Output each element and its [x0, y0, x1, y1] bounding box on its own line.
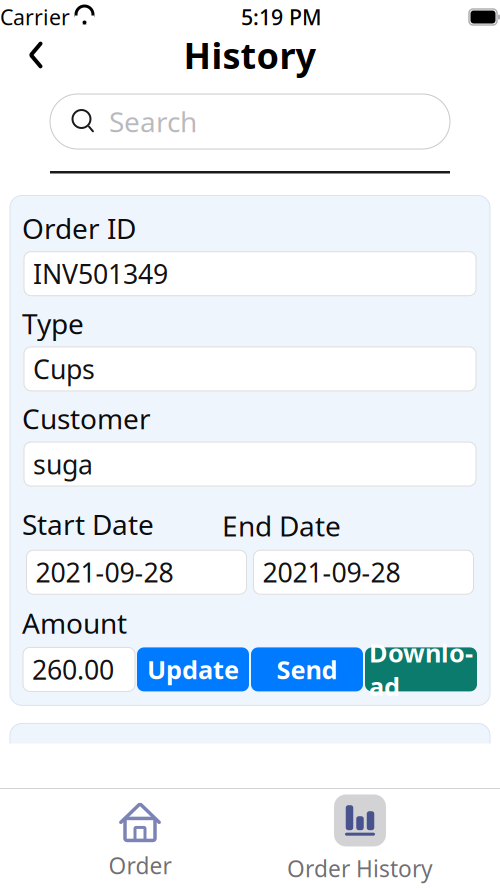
staticText: Order — [108, 850, 171, 880]
button[interactable]: Update — [137, 647, 249, 691]
button[interactable]: Order — [60, 793, 220, 885]
staticText: End Date — [222, 507, 341, 544]
staticText: Order ID — [22, 737, 136, 775]
staticText: Order ID — [22, 209, 136, 247]
staticText: INV501349 — [33, 256, 168, 291]
staticText: 5:19 PM — [241, 3, 322, 31]
staticText: Amount — [22, 604, 127, 641]
button[interactable]: Send — [251, 647, 363, 691]
button[interactable]: Back — [12, 33, 60, 77]
staticText: Order History — [287, 853, 433, 883]
staticText: Start Date — [22, 505, 154, 543]
staticText: History — [183, 31, 316, 79]
staticText: Send — [276, 653, 337, 686]
staticText: 2021-09-28 — [262, 554, 400, 590]
button[interactable]: Search — [50, 94, 450, 149]
staticText: INV561607 — [33, 784, 168, 819]
staticText: suga — [33, 446, 93, 482]
staticText: Download — [369, 636, 473, 703]
staticText: Update — [147, 653, 239, 686]
staticText: Search — [109, 103, 197, 140]
staticText: Cups — [33, 351, 95, 387]
staticText: Carrier — [0, 3, 70, 31]
staticText: Customer — [22, 400, 151, 437]
staticText: Type — [22, 305, 84, 342]
staticText: 260.00 — [32, 652, 114, 687]
staticText: 2021-09-28 — [35, 554, 173, 590]
button[interactable]: Order History — [280, 793, 440, 885]
button[interactable]: Download — [365, 647, 477, 691]
